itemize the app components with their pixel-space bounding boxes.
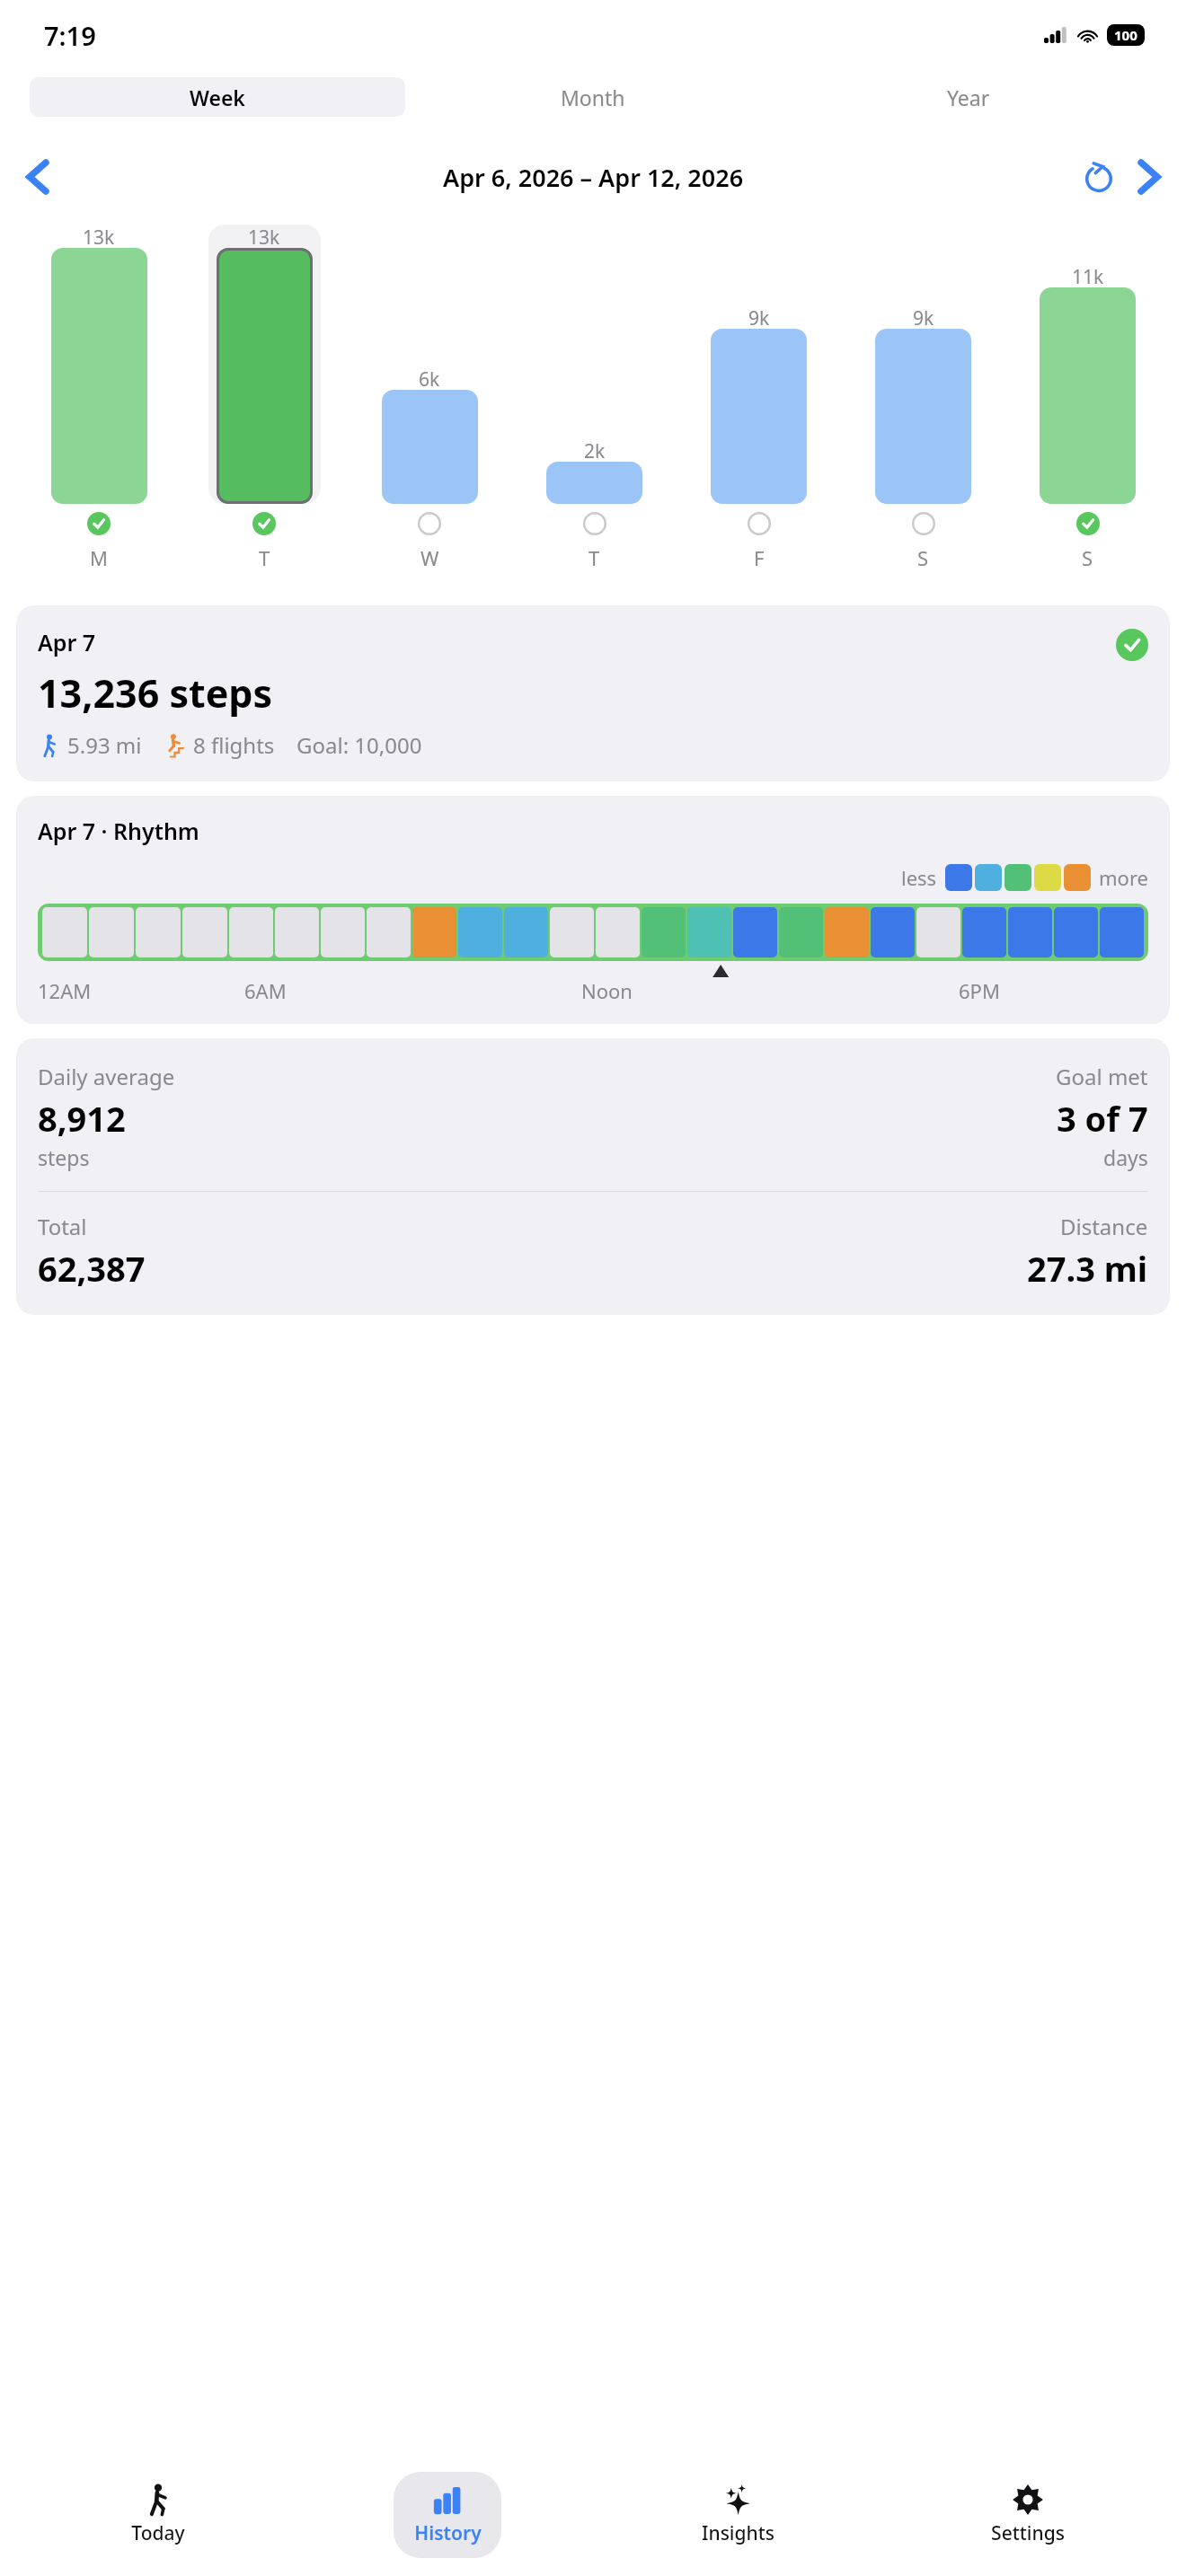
staticText: Distance	[1060, 1212, 1148, 1241]
staticText: 7:19	[44, 18, 96, 53]
staticText: Apr 7	[38, 627, 96, 657]
staticText: History	[414, 2520, 482, 2546]
button[interactable]: Apr 7	[16, 605, 1170, 781]
staticText: Month	[561, 84, 625, 111]
staticText: 3 of 7	[1057, 1095, 1148, 1142]
staticText: Apr 6, 2026 – Apr 12, 2026	[443, 161, 744, 194]
staticText: days	[1103, 1143, 1148, 1171]
staticText: 13,236 steps	[38, 666, 273, 719]
staticText: Goal: 10,000	[296, 730, 422, 760]
button[interactable]: 6k	[347, 225, 512, 571]
staticText: Apr 7 · Rhythm	[38, 816, 199, 846]
staticText: 6AM	[244, 977, 287, 1004]
button[interactable]: Daily average	[16, 1038, 1170, 1315]
button[interactable]: Next week	[1130, 158, 1168, 196]
button[interactable]: Year	[781, 77, 1156, 117]
staticText: 6k	[419, 366, 440, 393]
staticText: Total	[38, 1212, 87, 1241]
button[interactable]: 9k	[841, 225, 1005, 571]
staticText: S	[1082, 544, 1093, 571]
staticText: 6PM	[959, 977, 1000, 1004]
button[interactable]: 13k	[181, 225, 347, 571]
staticText: Week	[190, 84, 245, 111]
button[interactable]: Settings	[974, 2472, 1082, 2558]
staticText: S	[917, 544, 929, 571]
staticText: 9k	[913, 305, 934, 331]
button[interactable]: Today	[104, 2472, 212, 2558]
staticText: Settings	[991, 2520, 1065, 2546]
staticText: W	[420, 544, 439, 571]
staticText: 11k	[1072, 264, 1104, 290]
staticText: F	[754, 544, 765, 571]
staticText: M	[90, 544, 108, 571]
button[interactable]: 9k	[677, 225, 841, 571]
staticText: 8,912	[38, 1095, 126, 1142]
staticText: Insights	[702, 2520, 774, 2546]
staticText: 9k	[748, 305, 770, 331]
staticText: 8 flights	[193, 730, 275, 760]
button[interactable]: History	[394, 2472, 501, 2558]
staticText: Goal met	[1056, 1062, 1148, 1091]
button[interactable]: Apr 7 · Rhythm	[16, 796, 1170, 1024]
button[interactable]: Insights	[684, 2472, 792, 2558]
staticText: steps	[38, 1143, 90, 1171]
staticText: T	[259, 544, 270, 571]
staticText: 27.3 mi	[1027, 1245, 1148, 1292]
button[interactable]: 2k	[512, 225, 677, 571]
staticText: Year	[947, 84, 990, 111]
staticText: Today	[131, 2520, 185, 2546]
staticText: 62,387	[38, 1245, 146, 1292]
button[interactable]: Previous week	[18, 157, 58, 197]
button[interactable]: Month	[405, 77, 781, 117]
button[interactable]: 11k	[1005, 225, 1170, 571]
button[interactable]: Refresh	[1078, 156, 1120, 198]
staticText: 13k	[248, 225, 280, 251]
staticText: more	[1099, 864, 1148, 891]
staticText: T	[589, 544, 600, 571]
staticText: less	[901, 864, 937, 891]
staticText: 2k	[584, 438, 606, 464]
staticText: 5.93 mi	[67, 730, 142, 760]
staticText: 13k	[83, 225, 115, 251]
button[interactable]: 13k	[16, 225, 181, 571]
staticText: 12AM	[38, 977, 92, 1004]
staticText: 100	[1114, 26, 1137, 44]
button[interactable]: Week	[30, 77, 405, 117]
staticText: Daily average	[38, 1062, 175, 1091]
staticText: Noon	[581, 977, 633, 1004]
